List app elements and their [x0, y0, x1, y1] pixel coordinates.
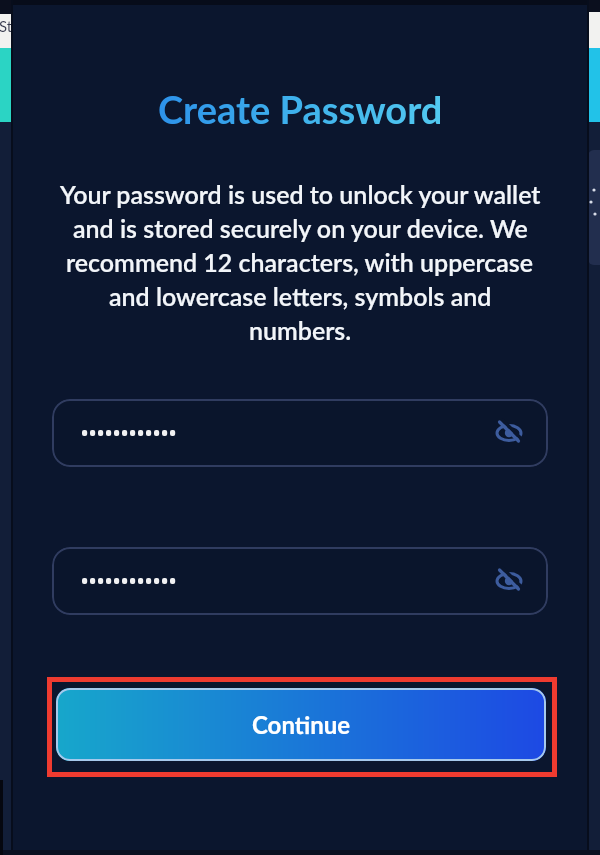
- staticText: Continue: [252, 710, 351, 739]
- button[interactable]: [495, 567, 523, 595]
- staticText: Create Password: [158, 86, 443, 132]
- button[interactable]: [52, 547, 548, 615]
- button[interactable]: Continue: [56, 688, 546, 761]
- button[interactable]: [495, 419, 523, 447]
- staticText: and lowercase letters, symbols and: [109, 281, 492, 311]
- staticText: and is stored securely on your device. W…: [73, 213, 528, 243]
- button[interactable]: [52, 399, 548, 467]
- staticText: St: [0, 17, 11, 35]
- staticText: numbers.: [249, 315, 352, 345]
- staticText: Your password is used to unlock your wal…: [60, 179, 541, 209]
- staticText: recommend 12 characters, with uppercase: [66, 247, 534, 277]
